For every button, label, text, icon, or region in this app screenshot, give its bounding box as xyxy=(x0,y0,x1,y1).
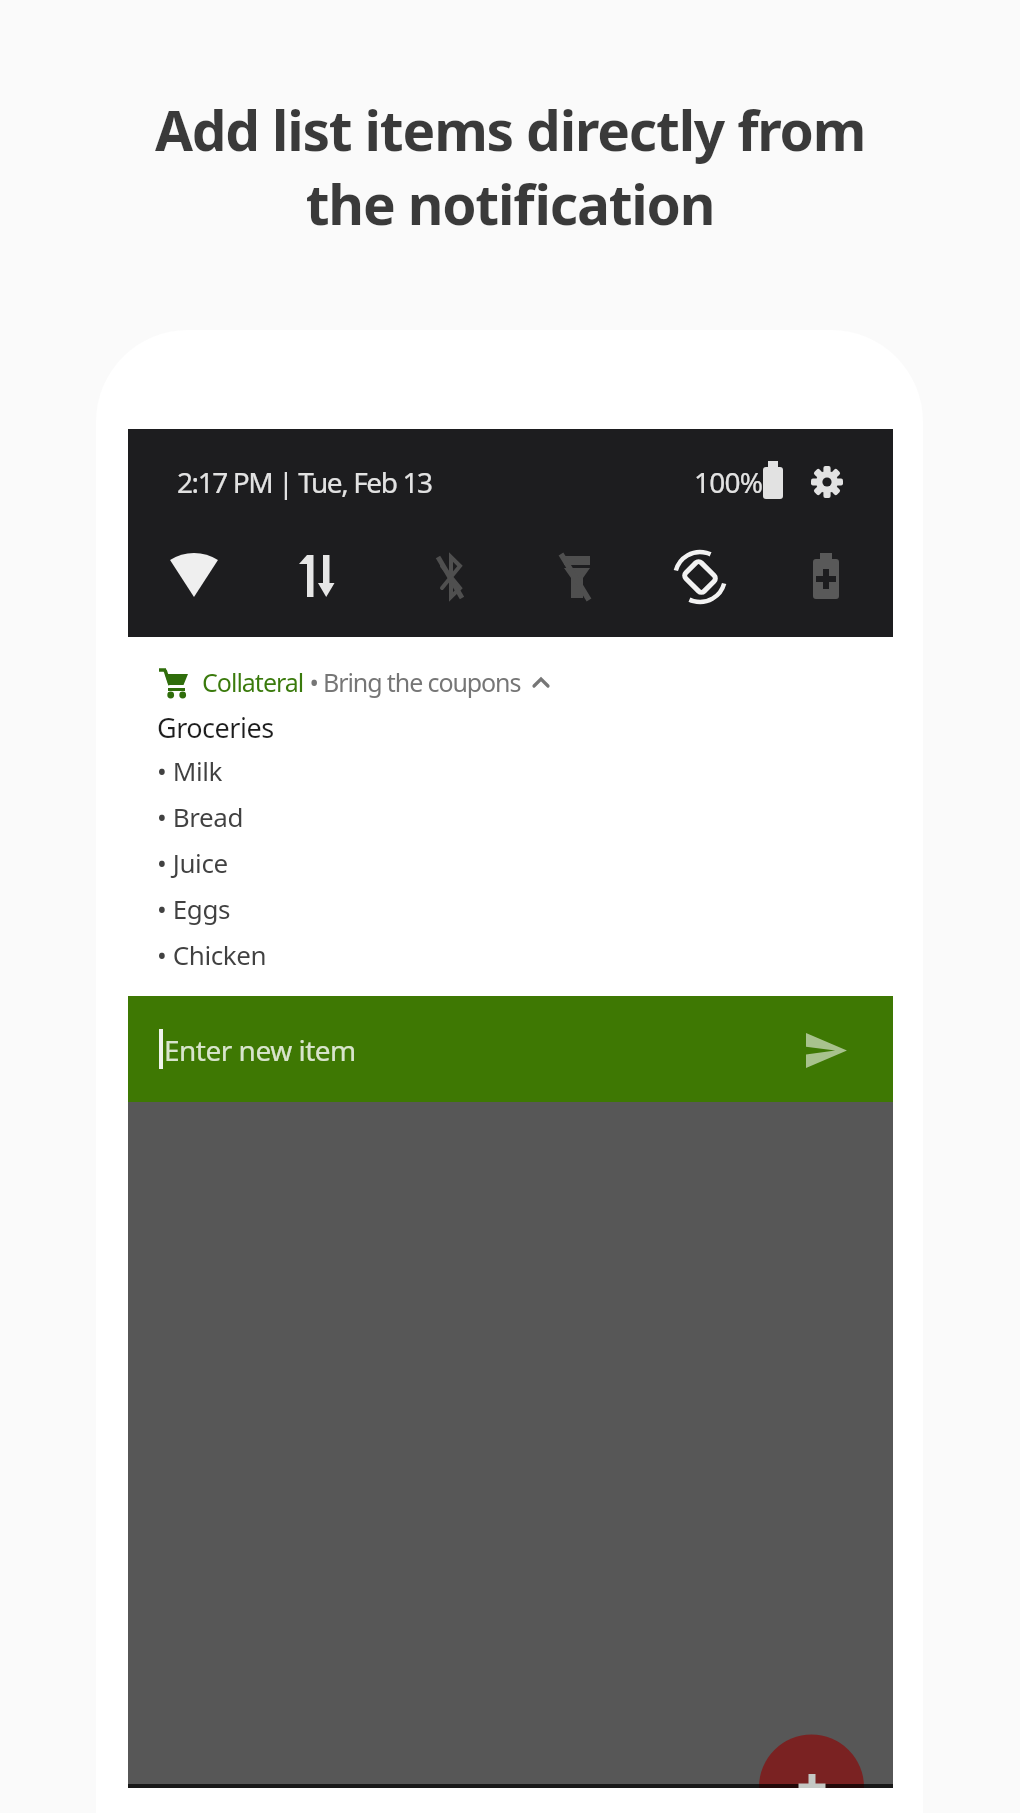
button[interactable] xyxy=(421,547,481,607)
button[interactable]: Enter new item xyxy=(128,996,893,1102)
staticText: • Chicken xyxy=(157,937,267,972)
button[interactable]: Collateral xyxy=(157,665,551,699)
staticText: the notification xyxy=(0,166,1020,241)
staticText: • Milk xyxy=(157,753,223,788)
staticText: • Eggs xyxy=(157,891,231,926)
staticText: 2:17 PM | Tue, Feb 13 xyxy=(177,463,432,501)
button[interactable] xyxy=(670,547,730,607)
staticText: Collateral xyxy=(202,665,304,699)
staticText: Add list items directly from xyxy=(0,92,1020,167)
staticText: 100% xyxy=(694,463,763,501)
button[interactable] xyxy=(289,547,349,607)
button[interactable] xyxy=(164,547,224,607)
staticText: • Juice xyxy=(157,845,228,880)
staticText: Enter new item xyxy=(164,1031,356,1069)
button[interactable] xyxy=(810,465,844,499)
button[interactable] xyxy=(796,547,856,607)
button[interactable] xyxy=(801,1025,853,1077)
staticText: Groceries xyxy=(157,709,274,746)
button[interactable] xyxy=(759,1734,864,1788)
button[interactable] xyxy=(547,547,607,607)
staticText: • Bread xyxy=(157,799,244,834)
staticText: • Bring the coupons xyxy=(304,665,521,699)
